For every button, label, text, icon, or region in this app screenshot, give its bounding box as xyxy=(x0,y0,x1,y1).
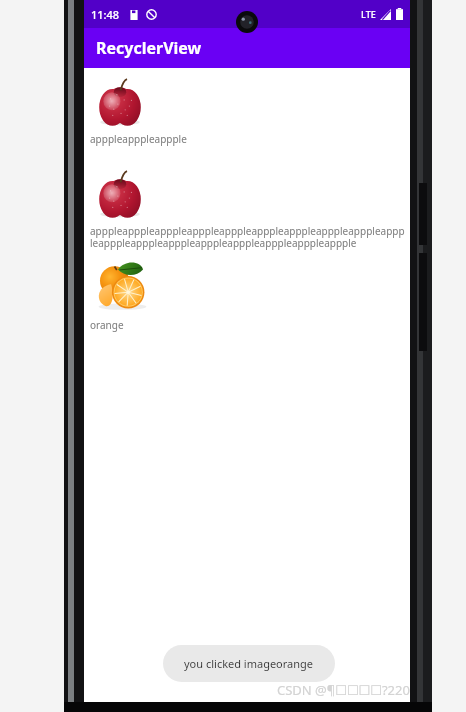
other: Apple image xyxy=(94,169,146,221)
button[interactable]: you clicked imageorange xyxy=(163,645,335,682)
staticText: LTE xyxy=(361,8,376,20)
button[interactable]: RecyclerView xyxy=(84,28,410,68)
staticText: apppleapppleapppleapppleapppleapppleappp… xyxy=(90,224,406,250)
staticText: apppleapppleappple xyxy=(90,132,406,146)
staticText: RecyclerView xyxy=(96,37,202,59)
button[interactable]: Apple image xyxy=(84,68,410,147)
other: Orange image xyxy=(94,258,151,315)
staticText: 11:48 xyxy=(91,7,120,22)
button[interactable]: Orange image xyxy=(84,251,410,333)
staticText: CSDN @¶☐☐☐☐?220 xyxy=(277,681,410,699)
staticText: orange xyxy=(90,318,406,332)
other: Apple image xyxy=(94,77,146,129)
staticText: you clicked imageorange xyxy=(184,656,314,671)
button[interactable]: Apple image xyxy=(84,147,410,251)
